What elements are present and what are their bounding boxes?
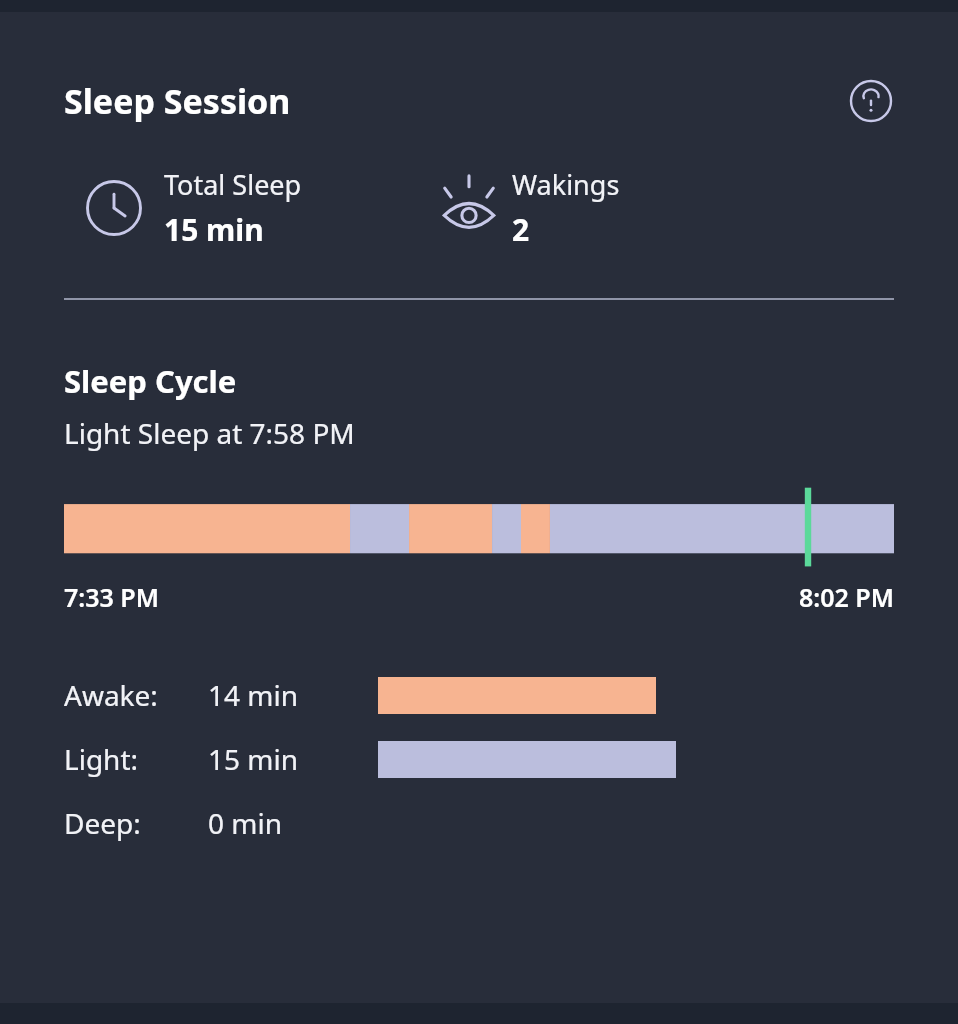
staticText: 2 <box>512 209 530 250</box>
staticText: Deep: <box>64 804 141 842</box>
staticText: Sleep Cycle <box>64 360 237 402</box>
other: Total sleep duration <box>64 179 164 237</box>
staticText: Light Sleep at 7:58 PM <box>64 414 355 452</box>
button[interactable]: Number of wakings <box>426 166 620 250</box>
staticText: 15 min <box>164 209 264 250</box>
staticText: 15 min <box>208 740 299 778</box>
button[interactable]: Total sleep duration <box>64 166 302 250</box>
other: Number of wakings <box>426 177 512 239</box>
button[interactable]: Awake: <box>64 672 894 718</box>
staticText: Light: <box>64 740 139 778</box>
staticText: Awake: <box>64 676 158 714</box>
button[interactable]: Light: <box>64 736 894 782</box>
staticText: 7:33 PM <box>64 580 159 614</box>
staticText: Wakings <box>512 166 620 203</box>
staticText: Sleep Session <box>64 78 291 124</box>
staticText: 8:02 PM <box>799 580 894 614</box>
staticText: 14 min <box>208 676 299 714</box>
staticText: Total Sleep <box>164 166 302 203</box>
button[interactable]: Deep: <box>64 800 894 846</box>
button[interactable]: Help <box>848 78 894 124</box>
staticText: 0 min <box>208 804 283 842</box>
